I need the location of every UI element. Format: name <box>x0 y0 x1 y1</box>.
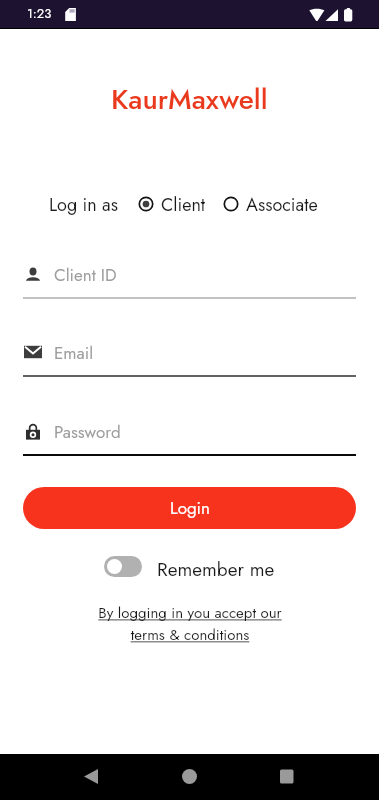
staticText: Client <box>161 192 206 216</box>
button[interactable]: By logging in you accept our terms & con… <box>0 602 379 646</box>
button[interactable]: Login <box>23 487 356 529</box>
staticText: 1:23 <box>27 4 52 23</box>
staticText: Client ID <box>54 263 117 285</box>
staticText: Remember me <box>157 556 275 577</box>
staticText: Email <box>54 341 94 363</box>
staticText: Associate <box>246 192 318 216</box>
button[interactable]: Remember me toggle <box>104 556 142 577</box>
staticText: Login <box>170 496 210 521</box>
button[interactable]: Client <box>138 192 206 216</box>
staticText: KaurMaxwell <box>111 79 268 115</box>
button[interactable]: Associate <box>223 192 318 216</box>
staticText: Log in as <box>49 192 119 216</box>
staticText: Password <box>54 420 121 442</box>
staticText: By logging in you accept our terms & con… <box>98 602 282 646</box>
